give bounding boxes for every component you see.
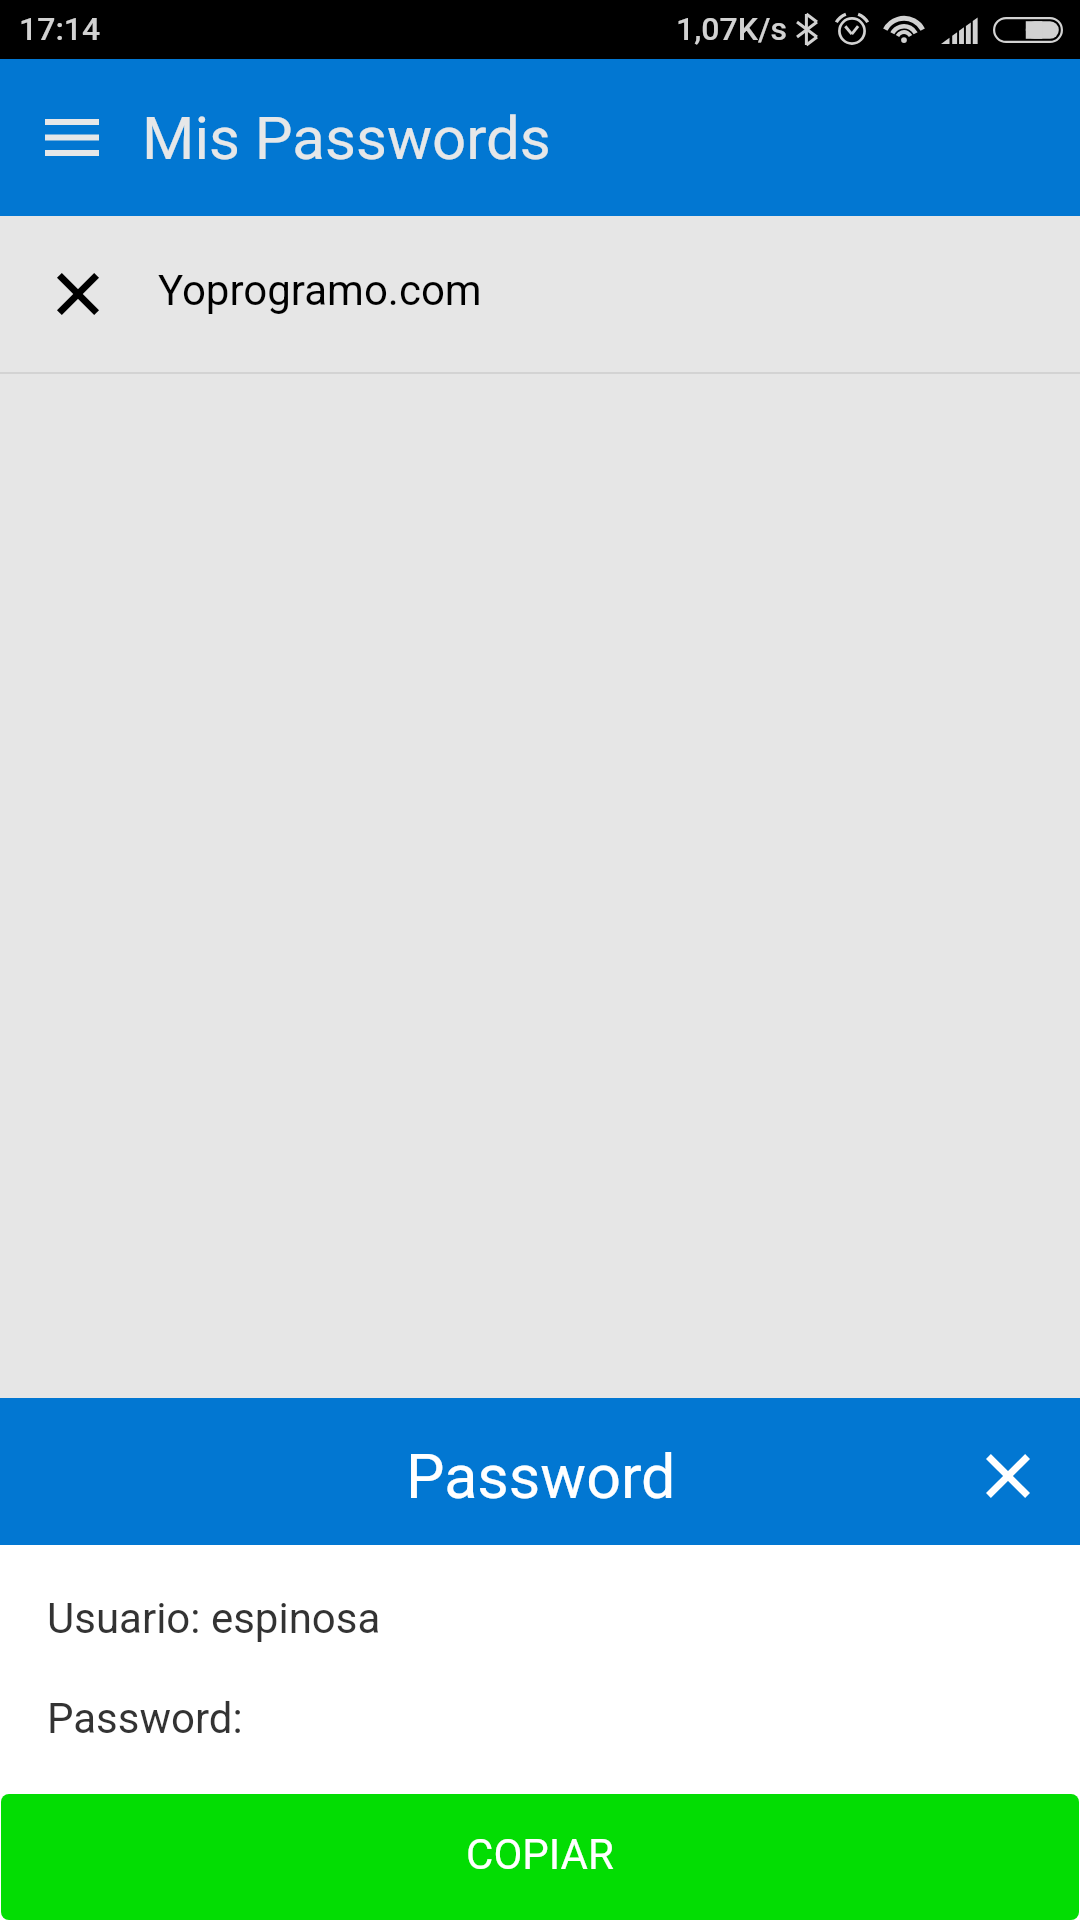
staticText: Password	[406, 1441, 676, 1512]
staticText: COPIAR	[466, 1830, 614, 1879]
button[interactable]: Close password panel	[964, 1432, 1052, 1520]
button[interactable]: COPIAR	[1, 1794, 1079, 1920]
button[interactable]: Open navigation menu	[21, 91, 123, 183]
staticText: Yoprogramo.com	[158, 266, 482, 315]
button[interactable]: Delete Yoprogramo.com	[0, 216, 1080, 373]
staticText: Password:	[47, 1694, 243, 1743]
staticText: 1,07K/s	[676, 10, 787, 48]
staticText: Mis Passwords	[142, 103, 551, 173]
staticText: 17:14	[19, 10, 101, 48]
button[interactable]: Delete Yoprogramo.com	[22, 238, 134, 350]
staticText: Usuario: espinosa	[47, 1594, 381, 1643]
